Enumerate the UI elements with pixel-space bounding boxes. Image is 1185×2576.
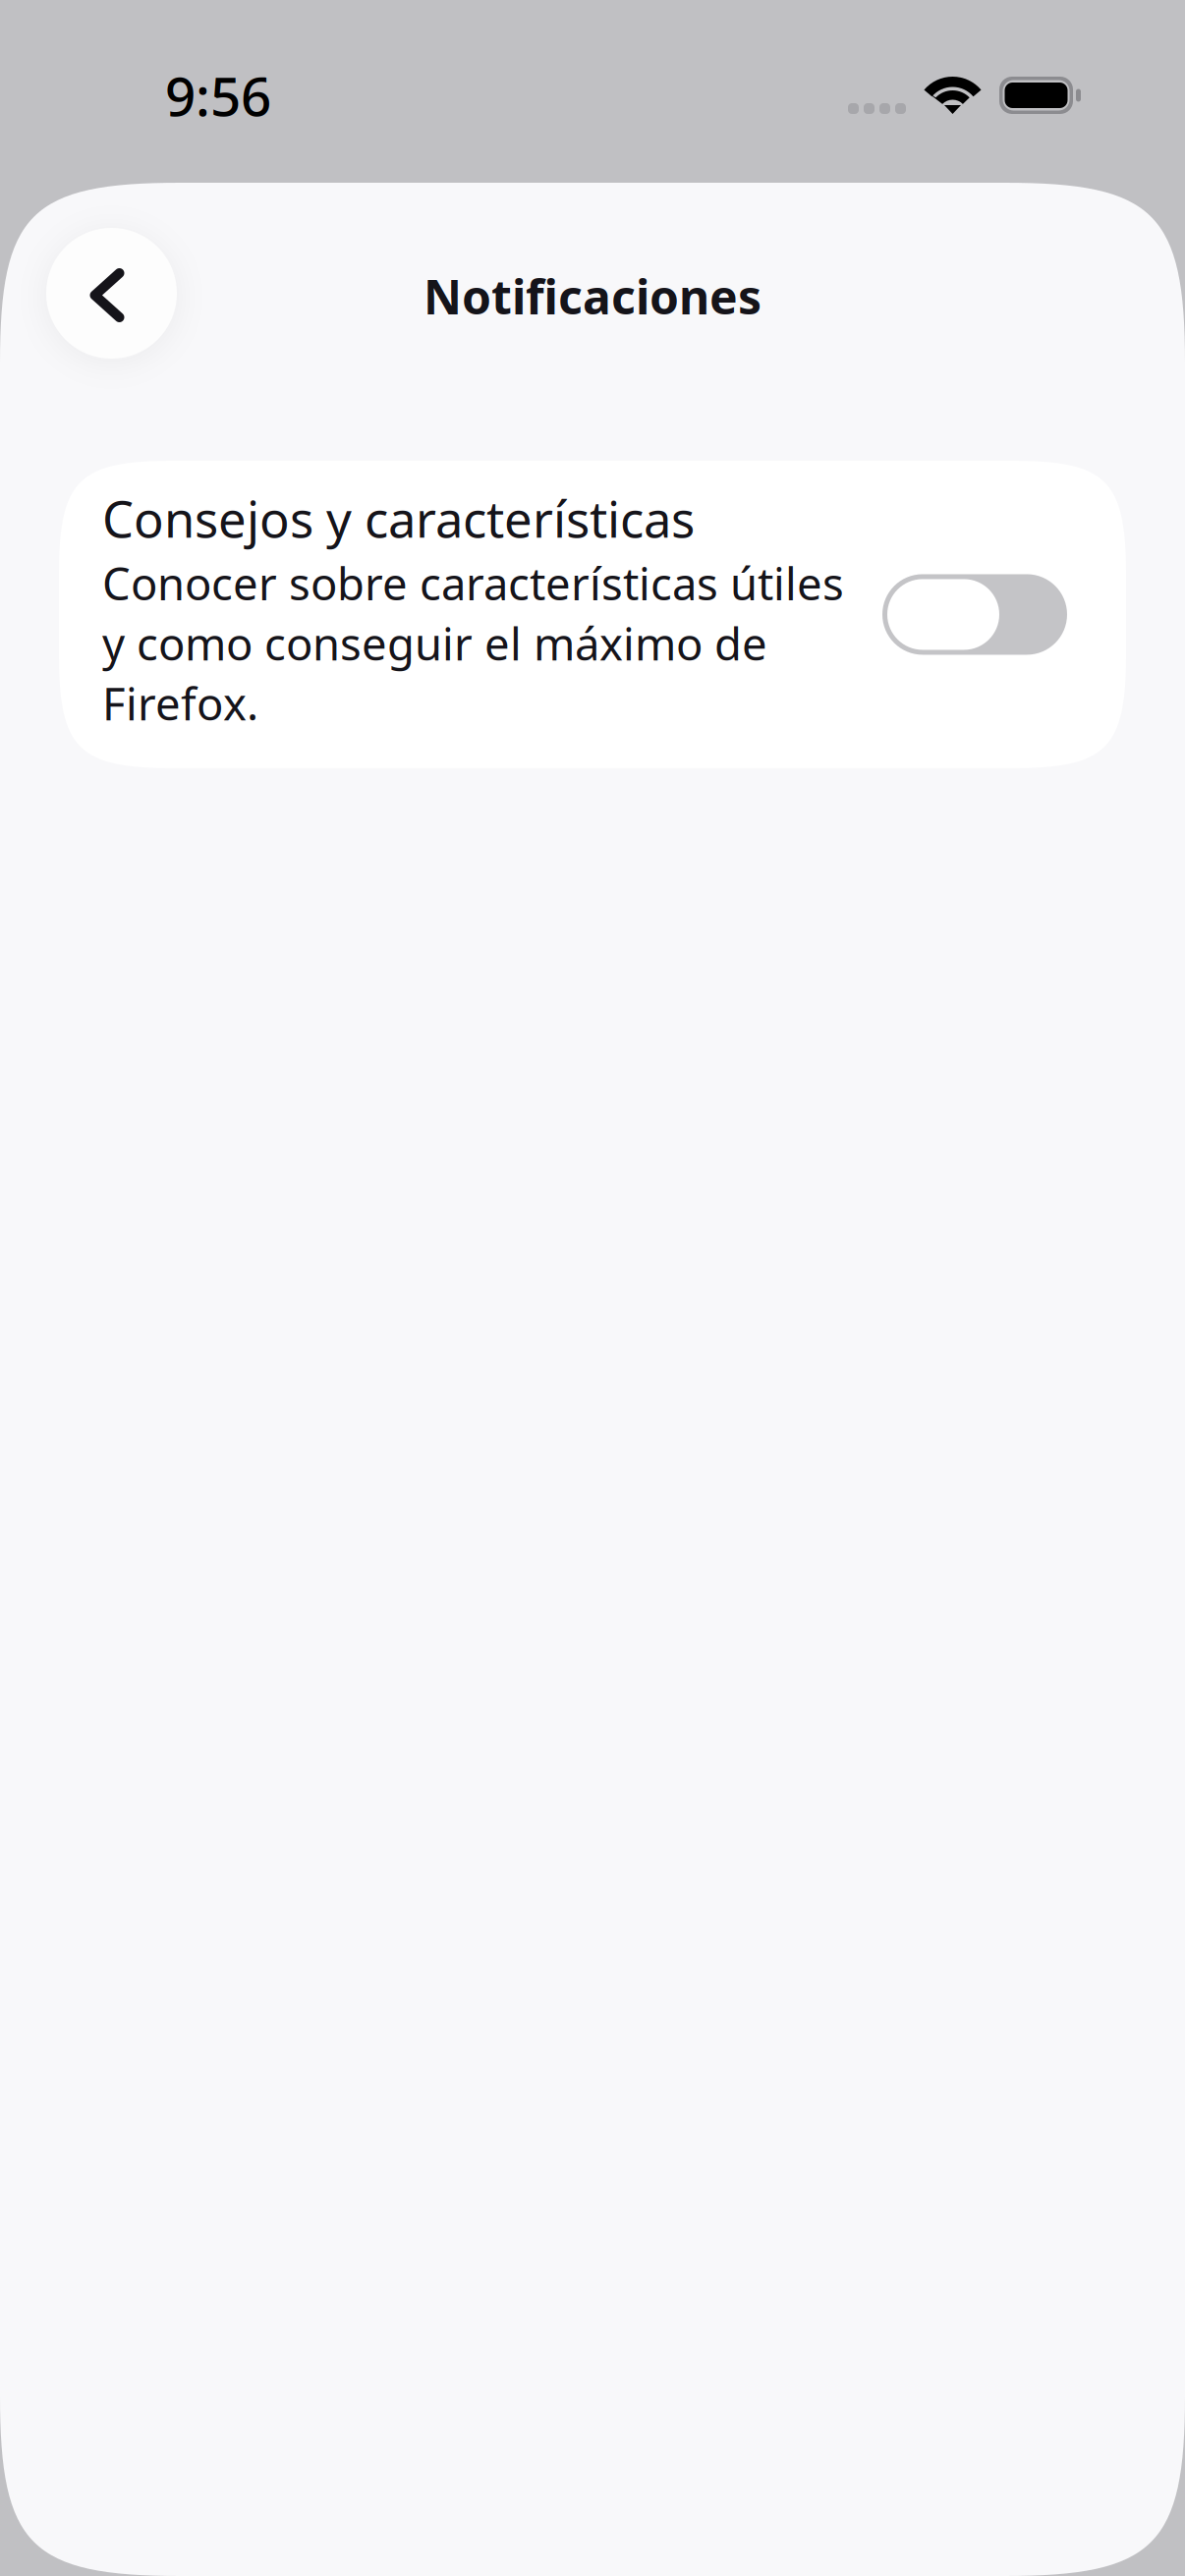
staticText: 9:56 xyxy=(165,60,271,131)
staticText: Conocer sobre características útiles y c… xyxy=(102,553,844,733)
staticText: Notificaciones xyxy=(423,265,762,327)
button[interactable]: Atrás xyxy=(46,228,177,359)
button[interactable]: Consejos y características xyxy=(59,461,1126,768)
staticText: Consejos y características xyxy=(102,485,695,551)
